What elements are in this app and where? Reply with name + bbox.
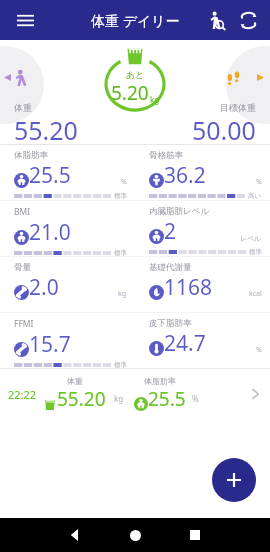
staticText: kcal [249,289,262,299]
button[interactable]: BMI [0,201,135,256]
staticText: 標準 [114,192,127,200]
staticText: レベル [240,234,262,243]
staticText: % [256,345,262,355]
staticText: 55.20 [14,113,78,147]
staticText: FFMI [14,318,34,330]
button[interactable]: 体脂肪率 [0,145,135,200]
staticText: % [256,177,262,187]
button[interactable]: Previous [0,46,44,124]
staticText: 25.5 [148,386,186,412]
other: Back [69,529,81,541]
staticText: % [192,393,199,404]
staticText: 体脂肪率 [14,150,48,161]
staticText: あと [126,69,145,80]
staticText: 36.2 [164,161,206,190]
button[interactable]: Add record [212,458,256,502]
staticText: 50.00 [192,113,256,147]
staticText: 骨格筋率 [149,150,183,161]
staticText: 55.20 [57,386,106,412]
staticText: 体重 [67,376,83,386]
staticText: BMI [14,206,31,218]
staticText: 標準 [114,249,127,256]
staticText: 体重 デイリー [91,11,180,30]
staticText: 2 [164,217,177,246]
button[interactable]: 皮下脂肪率 [135,313,270,368]
staticText: 1168 [164,273,213,302]
staticText: 体重 [14,102,32,113]
button[interactable]: Next [226,46,270,124]
button[interactable]: 骨格筋率 [135,145,270,200]
staticText: 15.7 [29,330,71,359]
other: Home [130,530,141,541]
staticText: 24.7 [164,329,206,358]
staticText: 内臓脂肪レベル [149,206,210,217]
staticText: 骨量 [14,262,31,273]
staticText: 体脂肪率 [144,376,176,386]
staticText: 皮下脂肪率 [149,318,192,329]
staticText: kg [118,289,127,299]
staticText: 25.5 [29,161,71,190]
staticText: 標準 [249,248,262,256]
staticText: 高い [248,192,262,200]
staticText: kg [114,393,124,404]
staticText: 目標体重 [220,102,256,113]
staticText: % [121,177,127,187]
staticText: kg [150,94,160,105]
staticText: 21.0 [29,218,71,247]
staticText: 22:22 [8,387,37,402]
button[interactable]: 内臓脂肪レベル [135,201,270,256]
staticText: 基礎代謝量 [149,262,192,273]
button[interactable]: 基礎代謝量 [135,257,270,312]
staticText: 標準 [114,361,127,368]
staticText: 5.20 [111,80,149,106]
button[interactable]: Search person [200,4,232,36]
button[interactable]: 骨量 [0,257,135,312]
button[interactable]: Sync [232,4,264,36]
staticText: 2.0 [29,273,59,302]
button[interactable]: Menu [8,3,42,37]
button[interactable]: FFMI [0,313,135,368]
button[interactable]: 22:22 [0,369,270,419]
